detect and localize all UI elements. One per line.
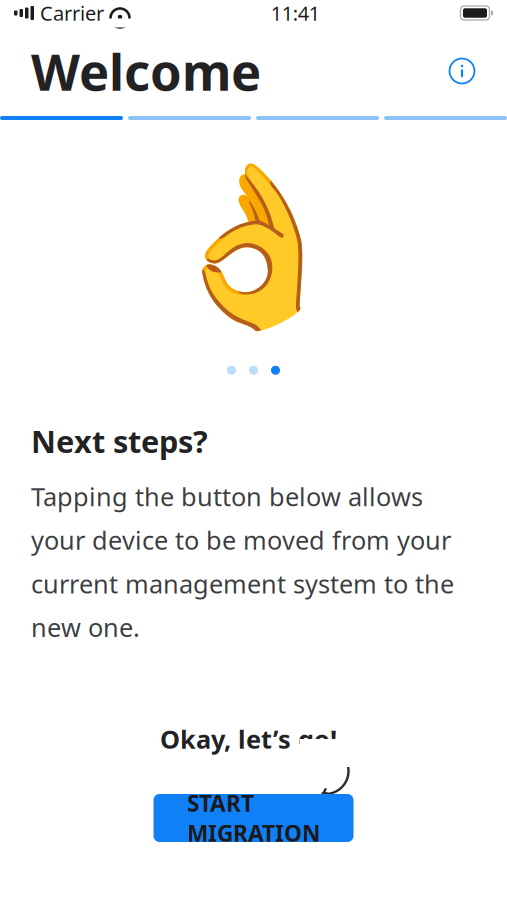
button[interactable]: START MIGRATION <box>153 794 353 842</box>
staticText: 11:41 <box>271 0 320 26</box>
staticText: Next steps? <box>31 421 208 461</box>
staticText: Carrier <box>40 0 104 26</box>
staticText: 👌 <box>155 156 351 336</box>
staticText: Tapping the button below allows your dev… <box>31 479 454 644</box>
staticText: START MIGRATION <box>187 788 320 848</box>
staticText: Welcome <box>31 37 261 105</box>
button[interactable]: Information <box>440 49 484 93</box>
staticText: Okay, let’s go! <box>160 722 337 756</box>
